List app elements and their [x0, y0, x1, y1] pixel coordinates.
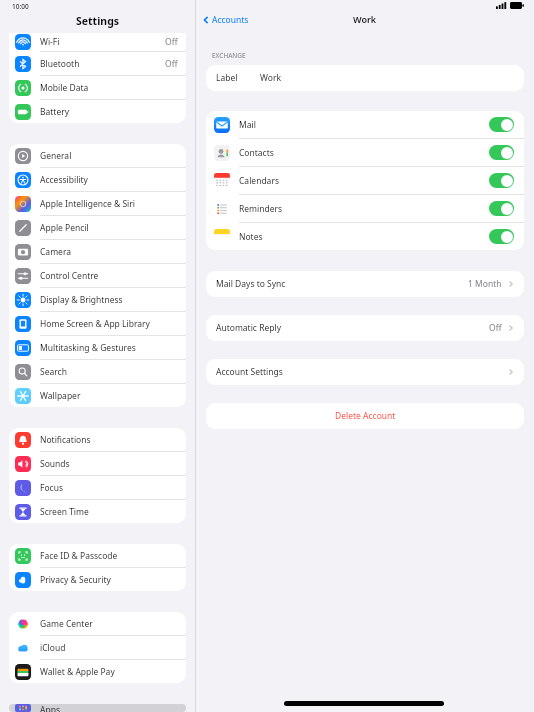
staticText: Label — [216, 72, 238, 84]
button[interactable]: Reminders — [206, 195, 524, 223]
staticText: Game Center — [40, 618, 93, 630]
staticText: Accessibility — [40, 174, 88, 186]
button[interactable]: Game Center — [9, 612, 186, 636]
button[interactable]: Privacy & Security — [9, 568, 186, 591]
staticText: Wallet & Apple Pay — [40, 666, 115, 678]
button[interactable]: Wallpaper — [9, 384, 186, 407]
button[interactable]: Multitasking & Gestures — [9, 336, 186, 360]
staticText: Calendars — [239, 175, 279, 187]
button[interactable]: Wallet & Apple Pay — [9, 660, 186, 683]
button[interactable]: Apple Pencil — [9, 216, 186, 240]
staticText: Off — [489, 322, 502, 334]
button[interactable]: Automatic Reply — [216, 315, 515, 341]
button[interactable]: Home Screen & App Library — [9, 312, 186, 336]
button[interactable]: Camera — [9, 240, 186, 264]
staticText: Camera — [40, 246, 71, 258]
staticText: Notifications — [40, 434, 91, 446]
staticText: Work — [260, 72, 281, 84]
staticText: Home Screen & App Library — [40, 318, 150, 330]
staticText: Display & Brightness — [40, 294, 123, 306]
staticText: Account Settings — [216, 366, 283, 378]
staticText: Face ID & Passcode — [40, 550, 118, 562]
button[interactable]: Control Centre — [9, 264, 186, 288]
staticText: Privacy & Security — [40, 574, 111, 586]
staticText: 1 Month — [468, 278, 502, 290]
button[interactable]: Apps — [9, 704, 186, 712]
button[interactable]: Notes — [206, 223, 524, 250]
button[interactable]: Apple Intelligence & Siri — [9, 192, 186, 216]
staticText: Battery — [40, 106, 70, 118]
staticText: Sounds — [40, 458, 70, 470]
button[interactable]: Focus — [9, 476, 186, 500]
button[interactable]: Face ID & Passcode — [9, 544, 186, 568]
staticText: Off — [165, 36, 178, 48]
staticText: Work — [353, 13, 377, 25]
staticText: Multitasking & Gestures — [40, 342, 136, 354]
staticText: Apple Pencil — [40, 222, 89, 234]
staticText: Settings — [76, 14, 120, 28]
button[interactable]: Notifications — [9, 428, 186, 452]
staticText: Wallpaper — [40, 390, 81, 402]
staticText: Mobile Data — [40, 82, 89, 94]
staticText: Contacts — [239, 147, 274, 159]
button[interactable]: Contacts — [206, 139, 524, 167]
staticText: Automatic Reply — [216, 322, 282, 334]
button[interactable]: Accounts — [201, 9, 249, 31]
staticText: Mail — [239, 119, 256, 131]
staticText: Apps — [40, 704, 60, 712]
staticText: Bluetooth — [40, 58, 80, 70]
button[interactable]: Bluetooth — [9, 52, 186, 76]
button[interactable]: Account Settings — [216, 359, 515, 385]
button[interactable]: General — [9, 144, 186, 168]
button[interactable]: Mail Days to Sync — [216, 271, 515, 297]
button[interactable]: iCloud — [9, 636, 186, 660]
button[interactable]: Calendars — [206, 167, 524, 195]
button[interactable]: Battery — [9, 100, 186, 123]
staticText: Control Centre — [40, 270, 99, 282]
button[interactable]: Mail — [206, 111, 524, 139]
staticText: Screen Time — [40, 506, 89, 518]
button[interactable]: Search — [9, 360, 186, 384]
button[interactable]: Sounds — [9, 452, 186, 476]
button[interactable]: Accessibility — [9, 168, 186, 192]
staticText: EXCHANGE — [212, 51, 246, 60]
staticText: Wi-Fi — [40, 36, 60, 48]
button[interactable]: Screen Time — [9, 500, 186, 523]
staticText: Focus — [40, 482, 63, 494]
button[interactable]: Mobile Data — [9, 76, 186, 100]
staticText: 10:00 — [12, 2, 29, 11]
button[interactable]: Display & Brightness — [9, 288, 186, 312]
button[interactable]: Wi-Fi — [9, 33, 186, 52]
staticText: Apple Intelligence & Siri — [40, 198, 136, 210]
staticText: iCloud — [40, 642, 66, 654]
button[interactable]: Delete Account — [206, 403, 524, 429]
staticText: Mail Days to Sync — [216, 278, 286, 290]
button[interactable]: Label — [216, 65, 524, 91]
staticText: Reminders — [239, 203, 283, 215]
staticText: Notes — [239, 231, 263, 243]
staticText: Accounts — [212, 14, 249, 26]
staticText: Delete Account — [335, 410, 396, 422]
staticText: Search — [40, 366, 67, 378]
staticText: General — [40, 150, 72, 162]
staticText: Off — [165, 58, 178, 70]
